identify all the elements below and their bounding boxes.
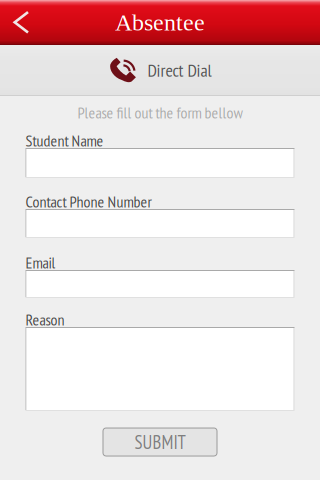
button[interactable] xyxy=(25,148,294,178)
staticText: Please fill out the form bellow xyxy=(77,102,242,123)
staticText: SUBMIT xyxy=(134,430,185,454)
staticText: Absentee xyxy=(115,9,205,36)
staticText: Reason xyxy=(25,309,64,330)
button[interactable] xyxy=(25,209,294,238)
button[interactable] xyxy=(25,270,294,298)
staticText: Contact Phone Number xyxy=(25,191,151,212)
button[interactable]: Direct Dial xyxy=(0,45,320,95)
button[interactable] xyxy=(25,327,294,411)
staticText: Email xyxy=(25,252,55,273)
button[interactable]: Back xyxy=(0,0,43,45)
staticText: Student Name xyxy=(25,130,103,151)
button[interactable]: SUBMIT xyxy=(103,428,217,456)
staticText: Direct Dial xyxy=(147,58,211,82)
